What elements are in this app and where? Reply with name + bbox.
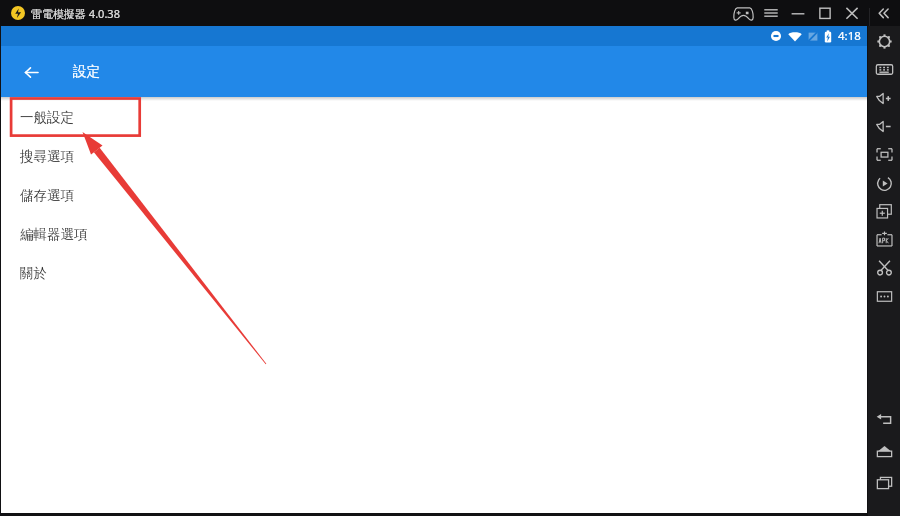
button[interactable]: More	[868, 283, 900, 309]
staticText: 關於	[20, 265, 47, 282]
button[interactable]: Scissors	[868, 254, 900, 280]
button[interactable]: Menu	[757, 0, 784, 26]
button[interactable]: Maximize	[811, 0, 838, 26]
button[interactable]: 編輯器選項	[1, 215, 867, 254]
button[interactable]: Gamepad	[730, 0, 757, 26]
staticText: 雷電模擬器 4.0.38	[31, 6, 120, 21]
button[interactable]: Collapse	[869, 0, 896, 26]
button[interactable]: Fullscreen	[868, 141, 900, 167]
button[interactable]: 儲存選項	[1, 176, 867, 215]
button[interactable]: Volume down	[868, 113, 900, 139]
staticText: 編輯器選項	[20, 226, 88, 243]
button[interactable]: Volume up	[868, 85, 900, 111]
button[interactable]: 一般設定	[1, 98, 867, 137]
button[interactable]: Install APK	[868, 226, 900, 252]
button[interactable]: Settings	[868, 28, 900, 54]
staticText: 儲存選項	[20, 187, 74, 204]
button[interactable]: Back	[868, 406, 900, 432]
button[interactable]: Home	[868, 438, 900, 464]
button[interactable]: Close	[838, 0, 865, 26]
button[interactable]: Keyboard	[868, 56, 900, 82]
button[interactable]: Minimize	[784, 0, 811, 26]
staticText: 設定	[73, 63, 100, 80]
button[interactable]: Recents	[868, 469, 900, 495]
staticText: 搜尋選項	[20, 148, 74, 165]
button[interactable]: Back	[7, 48, 55, 96]
button[interactable]: New window	[868, 198, 900, 224]
button[interactable]: 關於	[1, 254, 867, 293]
button[interactable]: Record	[868, 170, 900, 196]
button[interactable]: 搜尋選項	[1, 137, 867, 176]
staticText: 一般設定	[20, 109, 74, 126]
staticText: 4:18	[838, 28, 861, 44]
